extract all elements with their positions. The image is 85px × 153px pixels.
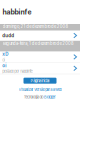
button[interactable]: Blogger [44, 94, 56, 99]
button[interactable]: oi [0, 63, 80, 74]
staticText: Página inicial [30, 78, 49, 83]
staticText: postado por habbinfe [2, 69, 32, 74]
staticText: oi [2, 63, 6, 68]
staticText: Blogger [44, 94, 56, 99]
staticText: domingo, 21 de dezembro de 2008 [2, 24, 68, 29]
button[interactable]: dudd [0, 30, 80, 40]
staticText: xD [2, 51, 8, 57]
staticText: habbinfe [2, 8, 31, 16]
button[interactable]: xD [0, 51, 80, 62]
staticText: Tecnologia do [24, 94, 43, 99]
staticText: dudd [2, 33, 14, 38]
staticText: Visualizar versão para a web [18, 87, 61, 92]
button[interactable]: Visualizar versão para a web [18, 87, 61, 92]
staticText: segunda-feira, 1 de dezembro de 2008 [2, 41, 74, 46]
staticText: oi [2, 57, 5, 62]
button[interactable]: Página inicial [23, 78, 56, 84]
